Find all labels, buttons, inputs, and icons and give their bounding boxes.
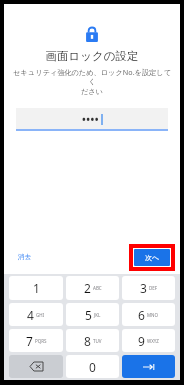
- button[interactable]: 9: [122, 329, 175, 352]
- button[interactable]: ••••: [16, 108, 168, 129]
- button[interactable]: 5: [66, 303, 119, 326]
- button[interactable]: 8: [66, 329, 119, 352]
- staticText: JKL: [94, 312, 101, 318]
- staticText: 1: [33, 280, 40, 296]
- staticText: 3: [140, 280, 147, 296]
- staticText: 画面ロックの設定: [45, 49, 139, 63]
- button[interactable]: 6: [122, 303, 175, 326]
- staticText: ••••: [82, 112, 100, 126]
- button[interactable]: 消去: [16, 251, 33, 263]
- button[interactable]: 3: [122, 276, 175, 300]
- staticText: MNO: [147, 312, 159, 318]
- button[interactable]: 4: [9, 303, 63, 326]
- button[interactable]: 2: [66, 276, 119, 300]
- staticText: セキュリティ強化のため、ロックNo.を設定してく ださい: [10, 67, 174, 97]
- staticText: 8: [84, 333, 91, 349]
- staticText: 0: [89, 359, 96, 375]
- staticText: PQRS: [35, 338, 47, 344]
- button[interactable]: 0: [66, 355, 119, 378]
- button[interactable]: 7: [9, 329, 63, 352]
- staticText: DEF: [149, 285, 158, 291]
- staticText: GHI: [36, 312, 45, 318]
- staticText: 9: [138, 333, 145, 349]
- staticText: TUV: [93, 338, 102, 344]
- button[interactable]: Backspace: [9, 355, 63, 378]
- button[interactable]: Enter: [122, 355, 175, 378]
- staticText: WXYZ: [147, 338, 159, 344]
- staticText: 2: [84, 280, 91, 296]
- staticText: 5: [85, 307, 92, 323]
- button[interactable]: 1: [9, 276, 63, 300]
- staticText: ABC: [93, 285, 102, 291]
- staticText: 7: [26, 333, 33, 349]
- staticText: 6: [138, 307, 145, 323]
- other: Lock: [84, 25, 100, 42]
- button[interactable]: 次へ: [134, 249, 170, 266]
- staticText: 4: [27, 307, 34, 323]
- staticText: 次へ: [145, 253, 160, 262]
